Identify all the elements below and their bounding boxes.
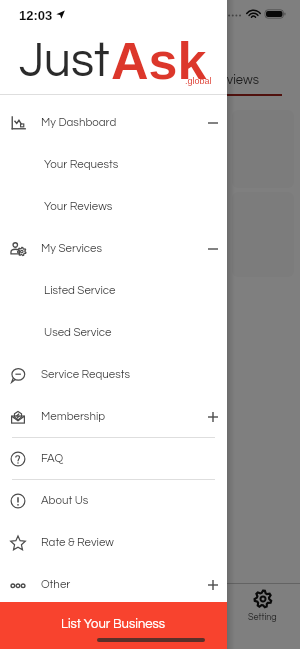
button[interactable]: Used Service xyxy=(0,312,227,354)
staticText: Your Requests xyxy=(44,159,119,171)
staticText: My Dashboard xyxy=(41,117,117,129)
button[interactable]: FAQ xyxy=(0,438,227,480)
staticText: Listed Service xyxy=(44,285,116,297)
staticText: .global xyxy=(185,76,212,86)
staticText: Setting xyxy=(248,613,277,622)
staticText: Other xyxy=(41,579,71,591)
staticText: About Us xyxy=(41,495,89,507)
other: Expand xyxy=(208,412,218,422)
other: Expand xyxy=(208,580,218,590)
button[interactable]: Rate & Review xyxy=(0,522,227,564)
button[interactable]: Your Reviews xyxy=(0,186,227,228)
staticText: Ask xyxy=(111,32,207,90)
button[interactable]: Setting xyxy=(242,589,283,622)
button[interactable]: List Your Business xyxy=(0,602,227,649)
staticText: Reviews xyxy=(211,73,260,86)
staticText: Just xyxy=(19,37,110,86)
staticText: Used Service xyxy=(44,327,112,339)
staticText: Rate & Review xyxy=(41,537,114,549)
button[interactable]: About Us xyxy=(0,480,227,522)
other: Collapse xyxy=(208,244,218,254)
staticText: FAQ xyxy=(41,453,64,465)
button[interactable]: Membership xyxy=(0,396,227,438)
other: Collapse xyxy=(208,118,218,128)
button[interactable]: My Services xyxy=(0,228,227,270)
button[interactable]: Listed Service xyxy=(0,270,227,312)
button[interactable]: Service Requests xyxy=(0,354,227,396)
staticText: My Services xyxy=(41,243,103,255)
staticText: Membership xyxy=(41,411,106,423)
staticText: Your Reviews xyxy=(44,201,113,213)
button[interactable]: Other xyxy=(0,564,227,606)
staticText: Service Requests xyxy=(41,369,131,381)
button[interactable]: Your Requests xyxy=(0,144,227,186)
staticText: List Your Business xyxy=(61,617,166,630)
staticText: 12:03 xyxy=(19,8,53,23)
button[interactable]: My Dashboard xyxy=(0,102,227,144)
